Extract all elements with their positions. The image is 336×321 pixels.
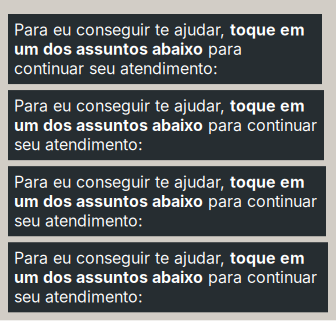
staticText: Para eu conseguir te ajudar, toque em um… xyxy=(14,172,317,230)
staticText: Para eu conseguir te ajudar, toque em um… xyxy=(14,248,317,306)
staticText: Para eu conseguir te ajudar, toque em um… xyxy=(14,96,317,154)
staticText: Para eu conseguir te ajudar, toque em um… xyxy=(14,20,305,78)
